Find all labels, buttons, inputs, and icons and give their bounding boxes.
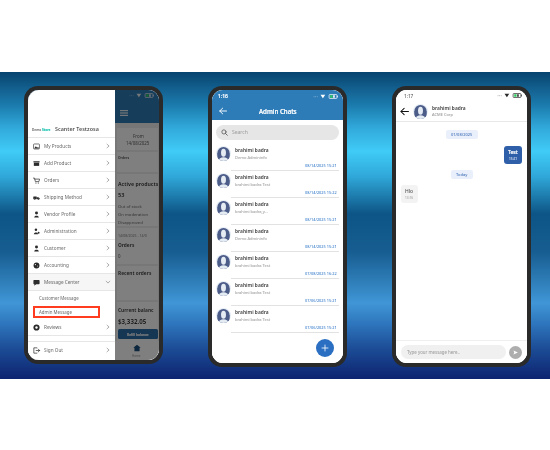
staticText: Administration [44, 228, 77, 234]
button[interactable]: Customer [28, 240, 115, 256]
staticText: 08/14/2025 15:21 [305, 244, 337, 249]
button[interactable]: My Products [28, 138, 115, 154]
staticText: Search [232, 129, 248, 136]
button[interactable]: brahimi badra [212, 171, 343, 198]
button[interactable]: New chat [316, 339, 334, 357]
staticText: Active products [118, 180, 158, 187]
staticText: Sign Out [44, 347, 64, 353]
staticText: 07/06/2025 15:21 [305, 325, 337, 330]
button[interactable]: Home [132, 341, 141, 360]
staticText: brahimi badra Test [235, 263, 271, 268]
button[interactable]: Reviews [28, 319, 115, 335]
staticText: From [133, 133, 144, 139]
staticText: Type your message here.. [407, 349, 460, 355]
staticText: brahimi badra,y... [235, 209, 268, 214]
staticText: Demo Admininfo [235, 155, 267, 160]
staticText: Test [508, 149, 518, 156]
staticText: 08/14/2025 15:21 [305, 217, 337, 222]
staticText: Disapproved [118, 220, 143, 226]
staticText: 15:21 [509, 157, 518, 161]
staticText: 08/14/2025 15:22 [305, 190, 337, 195]
staticText: 07/08/2025 16:22 [305, 271, 337, 276]
staticText: Shipping Method [44, 194, 82, 200]
staticText: brahimi badra [235, 228, 269, 235]
staticText: Message Center [44, 279, 80, 285]
button[interactable]: brahimi badra [212, 198, 343, 225]
button[interactable]: Sign Out [28, 342, 115, 358]
staticText: Accounting [44, 262, 69, 268]
staticText: brahimi badra [235, 147, 269, 154]
staticText: 14/08/2025 - 14/0 [118, 233, 147, 238]
button[interactable]: Refill balance [118, 329, 158, 339]
staticText: Store [42, 128, 51, 132]
button[interactable]: Administration [28, 223, 115, 239]
staticText: Customer [44, 245, 66, 251]
button[interactable]: brahimi badra [212, 144, 343, 171]
button[interactable]: Back [396, 103, 412, 119]
staticText: 14/08/2025 [126, 140, 150, 146]
button[interactable]: Message Center [28, 274, 115, 290]
button[interactable]: Accounting [28, 257, 115, 273]
staticText: Orders [118, 155, 130, 159]
staticText: Add Product [44, 160, 72, 166]
staticText: Admin Chats [259, 107, 297, 115]
staticText: 1:16 [218, 93, 228, 100]
staticText: Orders [44, 177, 60, 183]
button[interactable]: Orders [28, 172, 115, 188]
staticText: My Products [44, 143, 72, 149]
staticText: 01/08/2025 [451, 132, 473, 137]
button[interactable]: Type your message here.. [401, 345, 506, 359]
staticText: brahimi badra [235, 282, 269, 289]
staticText: ACME Corp [432, 112, 453, 117]
staticText: Out of stock [118, 204, 142, 210]
staticText: brahimi badra [235, 201, 269, 208]
staticText: Today [456, 172, 468, 177]
button[interactable]: Send [509, 346, 522, 359]
staticText: Recent orders [118, 270, 152, 277]
staticText: On moderation [118, 212, 149, 218]
staticText: brahimi badra Test [235, 290, 271, 295]
staticText: brahimi badra [235, 309, 269, 316]
button[interactable]: Vendor Profile [28, 206, 115, 222]
staticText: brahimi badra [235, 255, 269, 262]
button[interactable]: Back [215, 103, 231, 119]
staticText: Demo [32, 128, 42, 132]
staticText: brahimi badra Test [235, 182, 271, 187]
staticText: Admin Message [39, 309, 72, 315]
staticText: Reviews [44, 324, 62, 330]
staticText: Hlo [405, 188, 414, 195]
button[interactable]: Admin Message [28, 305, 115, 319]
staticText: Current balanc [118, 307, 154, 314]
staticText: 0 [118, 253, 121, 259]
staticText: brahimi badra [235, 174, 269, 181]
staticText: Customer Message [39, 295, 79, 301]
button[interactable]: brahimi badra [212, 306, 343, 333]
staticText: brahimi badra [432, 105, 466, 112]
staticText: Demo Admininfo [235, 236, 267, 241]
staticText: Scanter Testzosa [55, 125, 99, 132]
button[interactable]: brahimi badra [212, 252, 343, 279]
staticText: 08/14/2025 15:21 [305, 163, 337, 168]
button[interactable]: brahimi badra [212, 279, 343, 306]
staticText: Home [132, 354, 141, 358]
staticText: 1:17 [404, 93, 414, 99]
staticText: 53 [118, 191, 125, 199]
staticText: Orders [118, 242, 135, 249]
button[interactable]: Customer Message [28, 291, 115, 305]
button[interactable]: Search [216, 125, 339, 140]
staticText: $3,332.05 [118, 317, 147, 325]
staticText: 13:16 [405, 196, 414, 200]
staticText: 07/06/2025 15:21 [305, 298, 337, 303]
button[interactable]: brahimi badra [212, 225, 343, 252]
button[interactable]: Add Product [28, 155, 115, 171]
staticText: Refill balance [127, 332, 149, 337]
button[interactable]: Shipping Method [28, 189, 115, 205]
staticText: brahimi badra Test [235, 317, 271, 322]
staticText: Vendor Profile [44, 211, 76, 217]
